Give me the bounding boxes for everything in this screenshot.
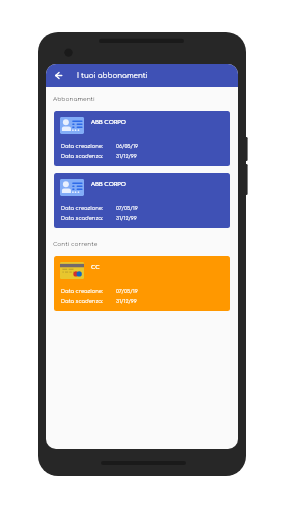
- staticText: 07/05/19: [116, 288, 138, 294]
- staticText: Data creazione:: [61, 288, 104, 294]
- staticText: 31/12/99: [116, 298, 137, 304]
- staticText: Data scadenza:: [61, 153, 103, 159]
- staticText: 06/05/19: [116, 143, 139, 149]
- staticText: Data creazione:: [61, 143, 104, 149]
- staticText: Data scadenza:: [61, 298, 103, 304]
- staticText: 31/12/99: [116, 215, 137, 221]
- staticText: I tuoi abbonamenti: [77, 72, 148, 80]
- staticText: 31/12/99: [116, 153, 137, 159]
- button[interactable]: ABB CORPO: [54, 111, 230, 166]
- staticText: Data creazione:: [61, 205, 104, 211]
- staticText: ABB CORPO: [91, 119, 126, 125]
- button[interactable]: Back: [46, 64, 71, 87]
- button[interactable]: CC: [54, 256, 230, 311]
- staticText: ABB CORPO: [91, 181, 126, 187]
- staticText: Abbonamenti: [53, 96, 95, 103]
- button[interactable]: ABB CORPO: [54, 173, 230, 228]
- staticText: Data scadenza:: [61, 215, 103, 221]
- staticText: 07/05/19: [116, 205, 138, 211]
- staticText: CC: [91, 264, 100, 270]
- staticText: Conti corrente: [53, 241, 98, 248]
